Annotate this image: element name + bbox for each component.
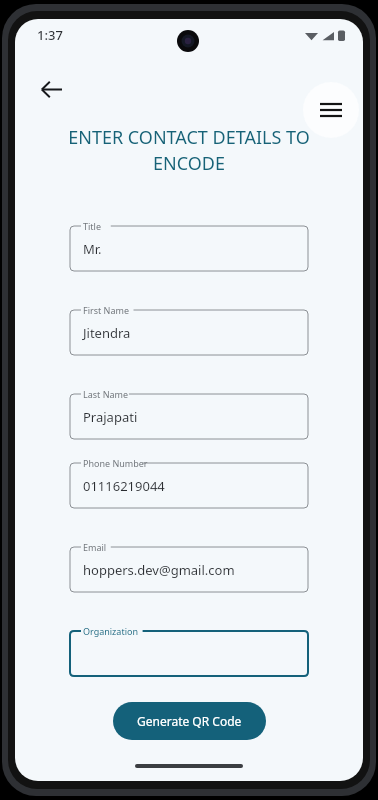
button[interactable]: Email (70, 539, 308, 592)
staticText: Last Name (83, 388, 129, 400)
button[interactable]: Menu (303, 82, 359, 138)
button[interactable]: Title (70, 218, 308, 271)
button[interactable]: First Name (70, 302, 308, 355)
staticText: Prajapati (83, 408, 138, 426)
staticText: 1:37 (37, 26, 63, 44)
button[interactable]: Generate QR Code (113, 702, 266, 740)
staticText: 01116219044 (83, 477, 165, 495)
staticText: Organization (83, 625, 138, 637)
staticText: Generate QR Code (137, 713, 242, 729)
button[interactable]: Back (29, 67, 73, 111)
staticText: Title (83, 220, 101, 232)
button[interactable]: Organization (70, 623, 308, 676)
staticText: Mr. (83, 240, 102, 258)
button[interactable]: Last Name (70, 386, 308, 439)
button[interactable]: Phone Number (70, 455, 308, 508)
staticText: Email (83, 541, 107, 553)
staticText: hoppers.dev@gmail.com (83, 561, 235, 579)
staticText: Phone Number (83, 457, 148, 469)
staticText: ENTER CONTACT DETAILS TO ENCODE (57, 125, 321, 176)
staticText: First Name (83, 304, 129, 316)
staticText: Jitendra (83, 324, 131, 342)
